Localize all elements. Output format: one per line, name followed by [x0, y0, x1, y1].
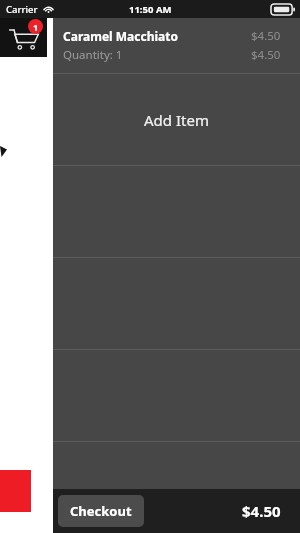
- button[interactable]: Checkout: [58, 495, 144, 527]
- staticText: 1: [33, 21, 39, 33]
- staticText: $4.50: [251, 28, 281, 44]
- staticText: 11:50 AM: [129, 3, 172, 16]
- button[interactable]: Cart: [5, 19, 43, 57]
- staticText: Caramel Macchiato: [63, 28, 178, 44]
- staticText: $4.50: [242, 501, 281, 521]
- staticText: $4.50: [251, 47, 281, 63]
- staticText: Carrier: [6, 3, 38, 16]
- button[interactable]: Caramel Macchiato: [53, 18, 300, 73]
- staticText: Quantity: 1: [63, 47, 123, 63]
- button[interactable]: Add Item: [53, 74, 300, 165]
- staticText: Add Item: [144, 110, 209, 130]
- staticText: Checkout: [70, 502, 132, 520]
